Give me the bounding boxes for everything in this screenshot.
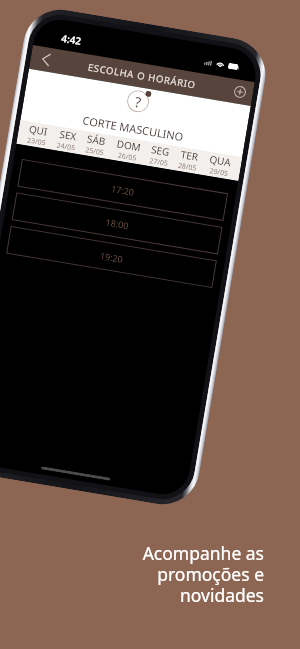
- staticText: ESCOLHA O HORÁRIO: [87, 61, 198, 92]
- staticText: 4:42: [60, 31, 82, 48]
- button[interactable]: Add: [225, 78, 255, 106]
- staticText: 18:00: [105, 216, 130, 231]
- button[interactable]: 19:20: [6, 226, 217, 288]
- button[interactable]: SÁB: [84, 131, 107, 158]
- button[interactable]: SEX: [56, 127, 78, 153]
- staticText: SEG: [150, 142, 171, 159]
- staticText: 23/05: [26, 135, 47, 148]
- staticText: QUA: [208, 152, 232, 169]
- staticText: 29/05: [209, 166, 229, 179]
- staticText: 19:20: [99, 249, 125, 265]
- button[interactable]: QUI: [26, 122, 49, 148]
- staticText: TER: [180, 147, 200, 164]
- staticText: Acompanhe as promoções e novidades: [142, 541, 264, 607]
- staticText: ?: [133, 92, 143, 112]
- staticText: 28/05: [177, 161, 198, 174]
- staticText: 25/05: [84, 145, 105, 158]
- button[interactable]: TER: [177, 147, 200, 174]
- staticText: SEX: [58, 127, 78, 143]
- button[interactable]: DOM: [114, 136, 143, 164]
- staticText: 17:20: [110, 182, 136, 198]
- staticText: 27/05: [148, 156, 169, 169]
- button[interactable]: 17:20: [17, 159, 228, 221]
- staticText: SÁB: [86, 131, 107, 148]
- staticText: 26/05: [117, 151, 137, 164]
- staticText: DOM: [116, 136, 143, 154]
- button[interactable]: 18:00: [12, 192, 222, 254]
- button[interactable]: Back: [29, 45, 62, 74]
- button[interactable]: SEG: [148, 142, 171, 169]
- staticText: CORTE MASCULINO: [21, 102, 245, 154]
- staticText: 24/05: [56, 140, 76, 153]
- button[interactable]: QUA: [207, 152, 232, 179]
- staticText: QUI: [28, 122, 49, 139]
